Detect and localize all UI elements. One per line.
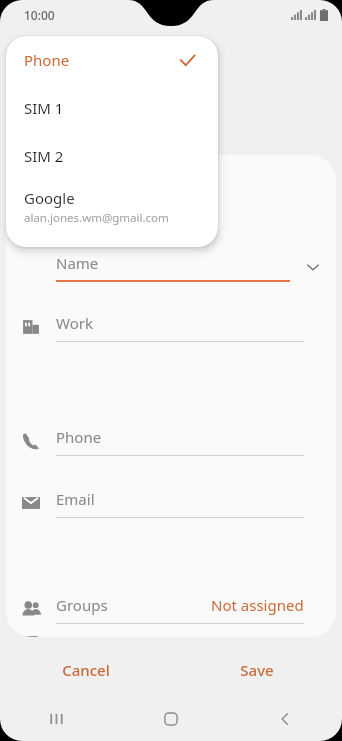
button[interactable]: Back	[228, 697, 342, 741]
button[interactable]: Google	[6, 180, 218, 240]
staticText: 10:00	[24, 7, 55, 23]
staticText: SIM 1	[24, 98, 64, 118]
button[interactable]: Home	[114, 697, 228, 741]
button[interactable]: Cancel	[0, 648, 171, 692]
staticText: Google	[24, 188, 75, 208]
staticText: Name	[56, 253, 99, 273]
staticText: Groups	[56, 595, 211, 615]
staticText: SIM 2	[24, 146, 64, 166]
button[interactable]: Email	[6, 481, 336, 525]
button[interactable]: SIM 1	[6, 84, 218, 132]
staticText: Phone	[24, 50, 179, 70]
staticText: Save	[240, 660, 274, 680]
button[interactable]: Phone	[6, 419, 336, 463]
button[interactable]: Name	[6, 243, 336, 291]
button[interactable]: Phone	[6, 36, 218, 84]
button[interactable]: Groups	[6, 587, 336, 631]
staticText: Work	[56, 313, 93, 333]
button[interactable]: Save	[171, 648, 342, 692]
staticText: Not assigned	[211, 595, 304, 615]
button[interactable]: SIM 2	[6, 132, 218, 180]
button[interactable]: Recents	[0, 697, 114, 741]
button[interactable]: Work	[6, 305, 336, 349]
staticText: Cancel	[62, 660, 110, 680]
button[interactable]: Expand name	[290, 243, 336, 291]
staticText: alan.jones.wm@gmail.com	[24, 210, 169, 226]
staticText: Email	[56, 489, 95, 509]
staticText: Phone	[56, 427, 102, 447]
